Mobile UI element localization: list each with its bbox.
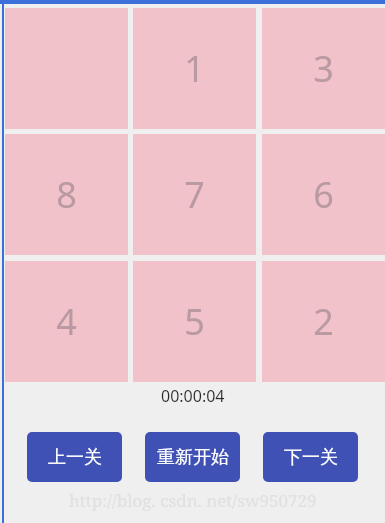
button[interactable]: 下一关 [263, 432, 358, 482]
staticText: 5 [184, 297, 205, 346]
staticText: 4 [56, 297, 77, 346]
staticText: http://blog. csdn. net/sw950729 [69, 489, 317, 512]
button[interactable]: 5 [133, 261, 256, 382]
staticText: 3 [313, 44, 334, 93]
staticText: 上一关 [48, 446, 102, 469]
button[interactable]: 2 [262, 261, 385, 382]
staticText: 重新开始 [157, 446, 229, 469]
staticText: 下一关 [284, 446, 338, 469]
button[interactable]: 1 [133, 8, 256, 129]
button[interactable]: 上一关 [27, 432, 122, 482]
button[interactable]: 8 [5, 134, 128, 255]
button[interactable]: 7 [133, 134, 256, 255]
staticText: 2 [313, 297, 334, 346]
button[interactable]: 3 [262, 8, 385, 129]
staticText: 7 [184, 170, 205, 219]
staticText: 8 [56, 170, 77, 219]
staticText: 1 [184, 44, 205, 93]
staticText: 6 [313, 170, 334, 219]
button[interactable]: 6 [262, 134, 385, 255]
button[interactable]: 重新开始 [145, 432, 240, 482]
button[interactable]: 4 [5, 261, 128, 382]
staticText: 00:00:04 [161, 385, 225, 407]
